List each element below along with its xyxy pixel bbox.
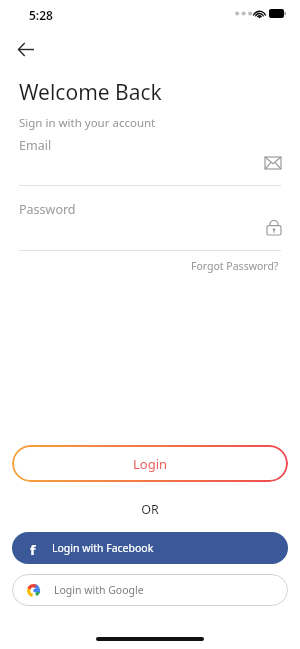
button[interactable]: f — [12, 532, 288, 564]
staticText: Login with Google — [54, 583, 144, 597]
staticText: Forgot Password? — [191, 259, 279, 273]
staticText: Login — [133, 455, 168, 473]
button[interactable]: Back — [12, 35, 40, 63]
button[interactable]: Password — [0, 197, 300, 250]
staticText: Password — [19, 201, 76, 218]
button[interactable]: Forgot Password? — [189, 256, 281, 276]
staticText: Sign in with your account — [19, 115, 156, 131]
other: Password — [267, 219, 281, 235]
button[interactable]: Email — [0, 132, 300, 186]
staticText: 5:28 — [29, 7, 53, 23]
other: Email — [265, 157, 281, 169]
staticText: f — [30, 541, 36, 555]
button[interactable]: Login with Google — [12, 574, 288, 606]
staticText: OR — [141, 501, 159, 518]
button[interactable]: Login — [12, 445, 288, 482]
staticText: Login with Facebook — [52, 541, 154, 555]
staticText: Welcome Back — [19, 78, 162, 107]
staticText: Email — [19, 137, 52, 154]
